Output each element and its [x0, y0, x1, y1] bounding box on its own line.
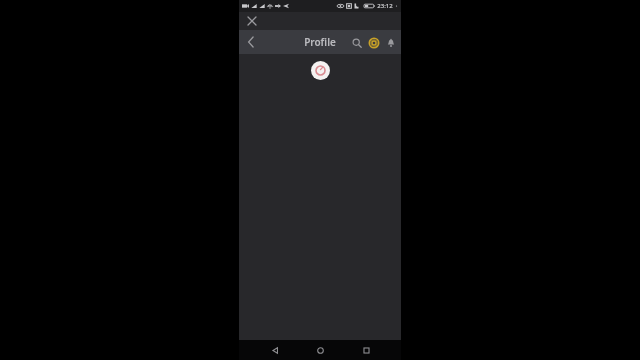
button[interactable]: Recent apps	[356, 340, 376, 360]
button[interactable]: Notifications	[383, 35, 398, 50]
button[interactable]: Close	[245, 14, 259, 28]
staticText: 23:12	[377, 2, 393, 10]
button[interactable]: Profile photo	[311, 61, 330, 80]
button[interactable]: Back	[243, 34, 259, 50]
button[interactable]: Search	[349, 35, 364, 50]
button[interactable]: Back	[265, 340, 285, 360]
button[interactable]: Rewards	[366, 35, 381, 50]
button[interactable]: Home	[310, 340, 330, 360]
staticText: Profile	[304, 35, 336, 49]
